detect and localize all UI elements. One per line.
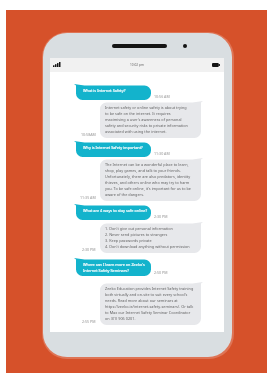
button[interactable]: 1. Don't give out personal information 2… <box>100 222 203 253</box>
other: Battery <box>212 63 220 67</box>
staticText: Internet safety or online safety is abou… <box>105 105 188 134</box>
staticText: 11:35 AM <box>80 195 96 200</box>
button[interactable]: Internet safety or online safety is abou… <box>100 101 203 138</box>
staticText: 11:30 AM <box>154 151 170 156</box>
button[interactable]: Where can I learn more on Zeeko's Intern… <box>74 258 151 276</box>
staticText: 2:30 PM <box>82 247 96 252</box>
staticText: 10:58AM <box>81 132 96 137</box>
button[interactable]: What are 4 ways to stay safe online? <box>74 204 151 220</box>
staticText: 2:30 PM <box>154 214 168 219</box>
staticText: Where can I learn more on Zeeko's Intern… <box>83 262 145 273</box>
staticText: What is Internet Safety? <box>83 88 126 93</box>
staticText: What are 4 ways to stay safe online? <box>83 208 148 213</box>
button[interactable]: The Internet can be a wonderful place to… <box>100 158 203 201</box>
staticText: The Internet can be a wonderful place to… <box>105 162 192 197</box>
other: Signal strength <box>53 62 61 67</box>
button[interactable]: Why is Internet Safety important? <box>74 141 151 157</box>
staticText: 10:56 AM <box>154 94 170 99</box>
button[interactable]: What is Internet Safety? <box>74 84 151 100</box>
staticText: Why is Internet Safety important? <box>83 145 143 150</box>
staticText: 1. Don't give out personal information 2… <box>105 226 190 249</box>
staticText: 10:02 pm <box>130 63 144 67</box>
staticText: Zeeko Education provides Internet Safety… <box>105 286 194 321</box>
staticText: 2:50 PM <box>154 270 168 275</box>
button[interactable]: Zeeko Education provides Internet Safety… <box>100 282 203 325</box>
staticText: 2:55 PM <box>82 319 96 324</box>
